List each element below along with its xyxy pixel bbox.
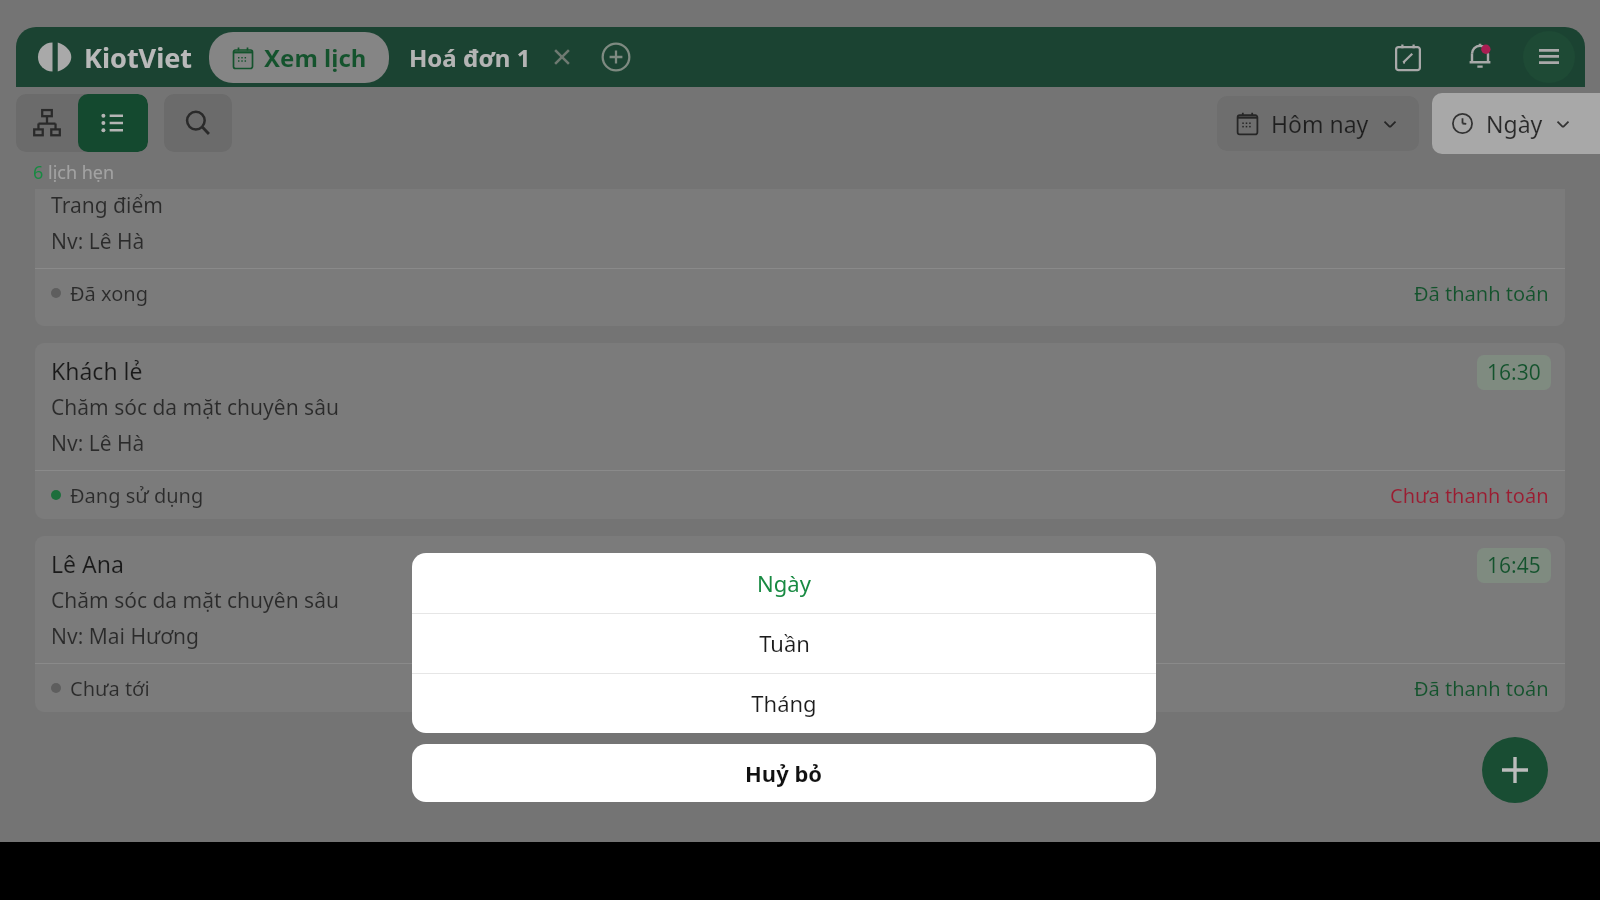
staticText: Huỷ bỏ <box>745 758 823 788</box>
staticText: Nv: Lê Hà <box>51 429 145 458</box>
staticText: 6 <box>33 160 44 185</box>
button[interactable]: Huỷ bỏ <box>412 744 1156 802</box>
staticText: Chăm sóc da mặt chuyên sâu <box>51 586 339 615</box>
button[interactable]: Xem lịch <box>209 32 389 83</box>
staticText: Ngày <box>757 568 811 598</box>
button[interactable]: Hoá đơn 1 <box>409 41 531 74</box>
staticText: Đã xong <box>70 280 148 307</box>
button[interactable]: Lịch hẹn <box>1385 34 1431 80</box>
staticText: lịch hẹn <box>48 160 115 185</box>
button[interactable]: Khách lẻ <box>35 343 1565 519</box>
button[interactable]: KiotViet <box>34 35 193 79</box>
staticText: 16:30 <box>1487 358 1541 387</box>
button[interactable]: Trang điểm <box>35 189 1565 326</box>
button[interactable]: Thông báo <box>1457 34 1503 80</box>
staticText: Chưa tới <box>70 675 150 702</box>
button[interactable]: Tìm kiếm <box>164 94 232 152</box>
staticText: Ngày <box>1486 108 1543 139</box>
staticText: Trang điểm <box>51 191 163 220</box>
staticText: Tháng <box>751 688 817 718</box>
staticText: Chưa thanh toán <box>1390 482 1549 509</box>
staticText: Tuần <box>759 628 810 658</box>
staticText: Hoá đơn 1 <box>409 41 531 74</box>
button[interactable]: Tháng <box>412 673 1156 733</box>
button[interactable]: Đóng hoá đơn <box>545 40 579 74</box>
button[interactable]: Thêm lịch hẹn <box>1482 737 1548 803</box>
staticText: Đã thanh toán <box>1414 280 1549 307</box>
staticText: Lê Ana <box>51 548 124 579</box>
button[interactable]: Hôm nay <box>1217 96 1419 151</box>
staticText: Chăm sóc da mặt chuyên sâu <box>51 393 339 422</box>
staticText: Xem lịch <box>264 41 367 74</box>
button[interactable]: Menu <box>1523 31 1575 83</box>
staticText: Đã thanh toán <box>1414 675 1549 702</box>
staticText: 16:45 <box>1487 551 1541 580</box>
button[interactable]: Ngày <box>1432 93 1600 154</box>
staticText: Đang sử dụng <box>70 482 204 509</box>
staticText: Hôm nay <box>1271 108 1369 139</box>
staticText: Khách lẻ <box>51 355 143 386</box>
button[interactable]: Tuần <box>412 613 1156 673</box>
button[interactable]: Thêm hoá đơn <box>597 38 635 76</box>
button[interactable]: Ngày <box>412 553 1156 613</box>
button[interactable]: Xem danh sách <box>78 94 148 152</box>
button[interactable]: Xem theo sơ đồ <box>16 94 78 152</box>
staticText: Nv: Lê Hà <box>51 227 145 256</box>
button[interactable]: Lê Ana <box>35 536 1565 712</box>
staticText: Nv: Mai Hương <box>51 622 199 651</box>
staticText: KiotViet <box>84 39 193 76</box>
